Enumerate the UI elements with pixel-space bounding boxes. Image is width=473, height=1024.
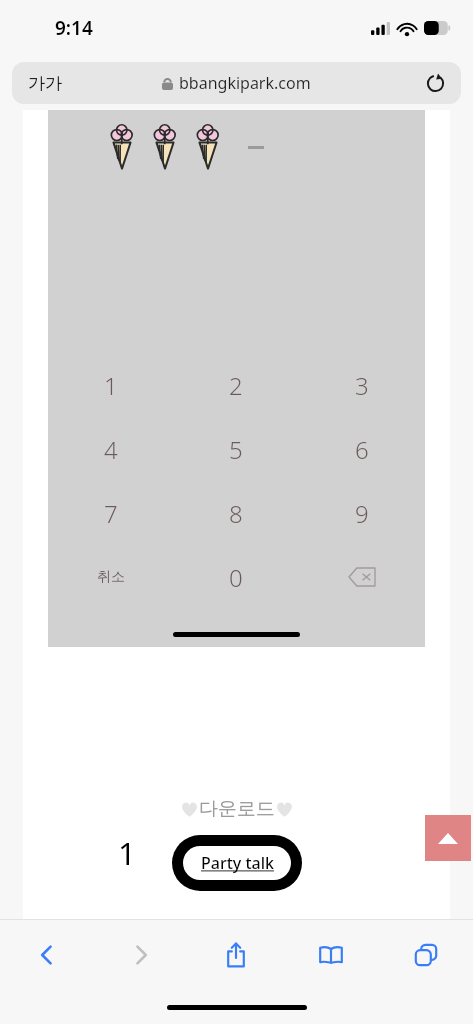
- button[interactable]: Back: [0, 920, 94, 990]
- button[interactable]: 취소: [48, 545, 173, 609]
- button[interactable]: 0: [173, 545, 299, 609]
- staticText: 2: [229, 369, 243, 402]
- button[interactable]: 6: [299, 417, 425, 481]
- button[interactable]: Scroll to top: [425, 815, 471, 861]
- staticText: 0: [229, 561, 243, 594]
- staticText: bbangkipark.com: [179, 72, 311, 94]
- staticText: 1: [104, 369, 118, 402]
- button[interactable]: Share: [188, 920, 283, 990]
- staticText: 7: [104, 497, 118, 530]
- button[interactable]: Reload: [419, 67, 451, 99]
- button[interactable]: 7: [48, 481, 173, 545]
- staticText: 1: [118, 832, 136, 874]
- staticText: 5: [229, 433, 243, 466]
- staticText: 다운로드: [199, 797, 275, 821]
- button[interactable]: 1: [48, 353, 173, 417]
- staticText: 9:14: [55, 15, 93, 41]
- button[interactable]: 4: [48, 417, 173, 481]
- button[interactable]: Backspace: [299, 545, 425, 609]
- button[interactable]: 2: [173, 353, 299, 417]
- button[interactable]: 8: [173, 481, 299, 545]
- button[interactable]: Bookmarks: [283, 920, 378, 990]
- button[interactable]: Forward: [94, 920, 188, 990]
- button[interactable]: 9: [299, 481, 425, 545]
- staticText: 가가: [28, 73, 62, 94]
- button[interactable]: 가가: [12, 62, 461, 104]
- staticText: 3: [355, 369, 369, 402]
- staticText: 취소: [97, 568, 125, 586]
- staticText: 8: [229, 497, 243, 530]
- staticText: Party talk: [201, 852, 274, 874]
- staticText: 9: [355, 497, 369, 530]
- button[interactable]: 5: [173, 417, 299, 481]
- button[interactable]: 3: [299, 353, 425, 417]
- button[interactable]: Tabs: [378, 920, 473, 990]
- staticText: 6: [355, 433, 369, 466]
- staticText: 4: [104, 433, 118, 466]
- button[interactable]: Party talk: [172, 835, 302, 891]
